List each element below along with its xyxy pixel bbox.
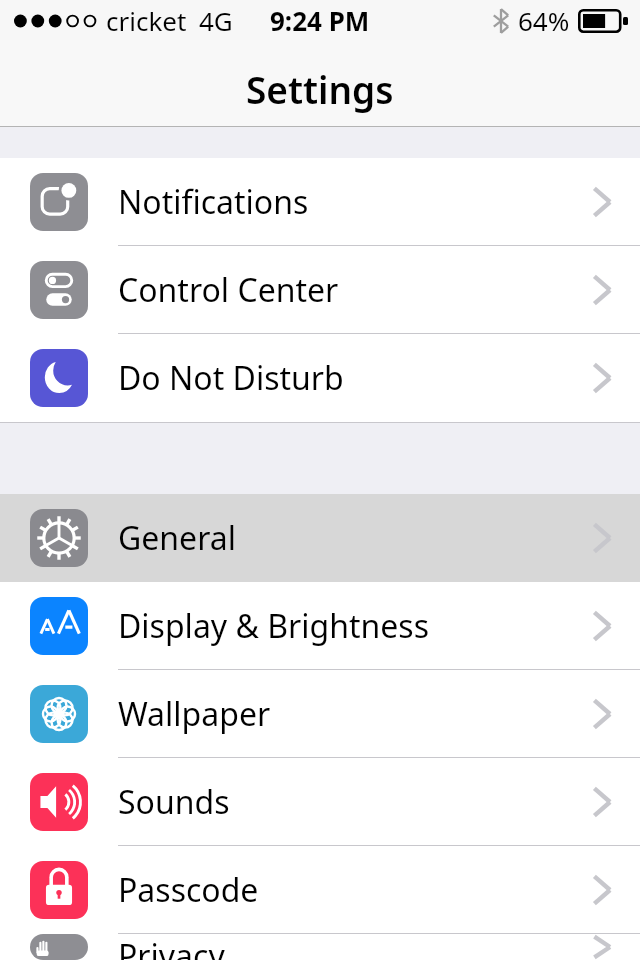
staticText: Display & Brightness xyxy=(118,604,429,648)
staticText: cricket xyxy=(106,3,187,38)
staticText: Privacy xyxy=(118,934,225,960)
button[interactable]: Passcode xyxy=(0,846,640,934)
button[interactable]: Privacy xyxy=(0,934,640,960)
staticText: Settings xyxy=(246,64,394,114)
other: Do Not Disturb xyxy=(30,349,88,407)
staticText: 4G xyxy=(199,3,233,38)
staticText: General xyxy=(118,516,236,560)
other: Control Center xyxy=(30,261,88,319)
button[interactable]: Display and Brightness xyxy=(0,582,640,670)
button[interactable]: Wallpaper xyxy=(0,670,640,758)
staticText: 64% xyxy=(518,3,570,38)
other: Wallpaper xyxy=(30,685,88,743)
staticText: Do Not Disturb xyxy=(118,356,344,400)
other: Sounds xyxy=(30,773,88,831)
button[interactable]: Sounds xyxy=(0,758,640,846)
other: Passcode xyxy=(30,861,88,919)
button[interactable]: Do Not Disturb xyxy=(0,334,640,422)
staticText: Control Center xyxy=(118,268,339,312)
other: Display and Brightness xyxy=(30,597,88,655)
staticText: 9:24 PM xyxy=(270,3,370,38)
staticText: Notifications xyxy=(118,180,309,224)
other: Notifications xyxy=(30,173,88,231)
other: General xyxy=(30,509,88,567)
staticText: Passcode xyxy=(118,868,259,912)
button[interactable]: Notifications xyxy=(0,158,640,246)
staticText: Sounds xyxy=(118,780,230,824)
other: Privacy xyxy=(30,934,88,960)
button[interactable]: Control Center xyxy=(0,246,640,334)
button[interactable]: General xyxy=(0,494,640,582)
staticText: Wallpaper xyxy=(118,692,271,736)
